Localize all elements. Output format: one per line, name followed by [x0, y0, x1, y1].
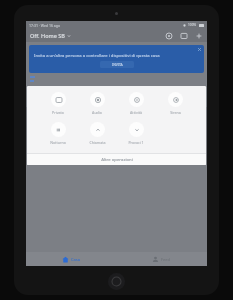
button[interactable]: Notturno: [41, 122, 75, 145]
staticText: Casa: [71, 257, 81, 262]
button[interactable]: Provaci 1: [119, 122, 153, 145]
button[interactable]: Nest Pro: [26, 87, 207, 107]
button[interactable]: Casa: [26, 252, 116, 266]
button[interactable]: Add device: [194, 31, 203, 40]
staticText: Audio: [92, 110, 102, 115]
staticText: Attività: [130, 110, 142, 115]
staticText: Chiamata: [89, 140, 106, 145]
staticText: Provaci 1: [128, 140, 144, 145]
button[interactable]: INVITA: [100, 61, 134, 68]
button[interactable]: Privato: [41, 92, 75, 115]
button[interactable]: Chiamata: [80, 122, 114, 145]
button[interactable]: Off. Home SB: [30, 32, 71, 39]
button[interactable]: Attività: [119, 92, 153, 115]
staticText: Privato: [52, 110, 64, 115]
staticText: Notturno: [50, 140, 66, 145]
staticText: INVITA: [112, 62, 123, 67]
button[interactable]: Settings: [164, 31, 173, 40]
button[interactable]: Audio: [80, 92, 114, 115]
staticText: Off. Home SB: [30, 32, 65, 39]
staticText: Camera: [46, 98, 60, 103]
button[interactable]: Invita a un'altra persona a controllare …: [29, 45, 204, 73]
button[interactable]: Altre operazioni: [27, 154, 206, 165]
staticText: Nest Pro: [46, 91, 65, 97]
staticText: 17:31 · Wed 16 ago: [29, 23, 61, 28]
staticText: Invita a un'altra persona a controllare …: [34, 53, 160, 59]
staticText: 100%: [188, 23, 197, 27]
button[interactable]: Cast: [179, 31, 188, 40]
staticText: Sirena: [170, 110, 181, 115]
staticText: Feed: [161, 257, 171, 262]
button[interactable]: Sirena: [158, 92, 192, 115]
staticText: Altre operazioni: [101, 157, 133, 163]
